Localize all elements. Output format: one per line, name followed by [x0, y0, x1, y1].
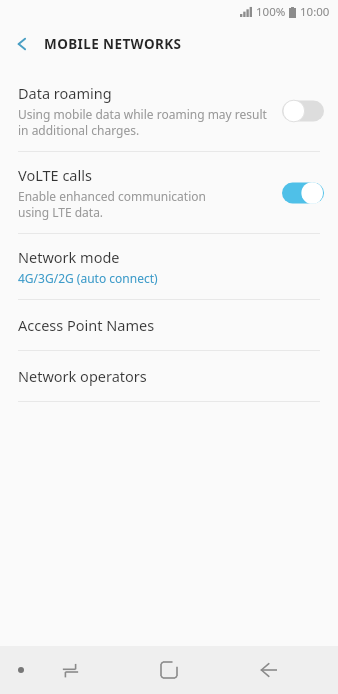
button[interactable]: Data roaming: [0, 70, 338, 151]
staticText: Data roaming: [18, 83, 112, 103]
button[interactable]: Access Point Names: [0, 300, 338, 350]
button[interactable]: Recents: [46, 646, 94, 694]
staticText: Using mobile data while roaming may resu…: [18, 106, 267, 138]
button[interactable]: Toggle on: [282, 180, 324, 206]
staticText: 10:00: [300, 4, 330, 20]
staticText: 100%: [256, 4, 286, 20]
button[interactable]: Home: [145, 646, 193, 694]
button[interactable]: Toggle off: [282, 98, 324, 124]
staticText: 4G/3G/2G (auto connect): [18, 270, 158, 286]
button[interactable]: Network operators: [0, 351, 338, 401]
button[interactable]: Network mode: [0, 234, 338, 299]
button[interactable]: VoLTE calls: [0, 152, 338, 233]
button[interactable]: Back: [244, 646, 292, 694]
button[interactable]: Back: [0, 24, 44, 64]
staticText: Enable enhanced communication using LTE …: [18, 188, 206, 220]
staticText: Network mode: [18, 247, 120, 267]
staticText: MOBILE NETWORKS: [44, 35, 182, 53]
staticText: Access Point Names: [18, 315, 155, 335]
staticText: Network operators: [18, 366, 147, 386]
staticText: VoLTE calls: [18, 165, 92, 185]
